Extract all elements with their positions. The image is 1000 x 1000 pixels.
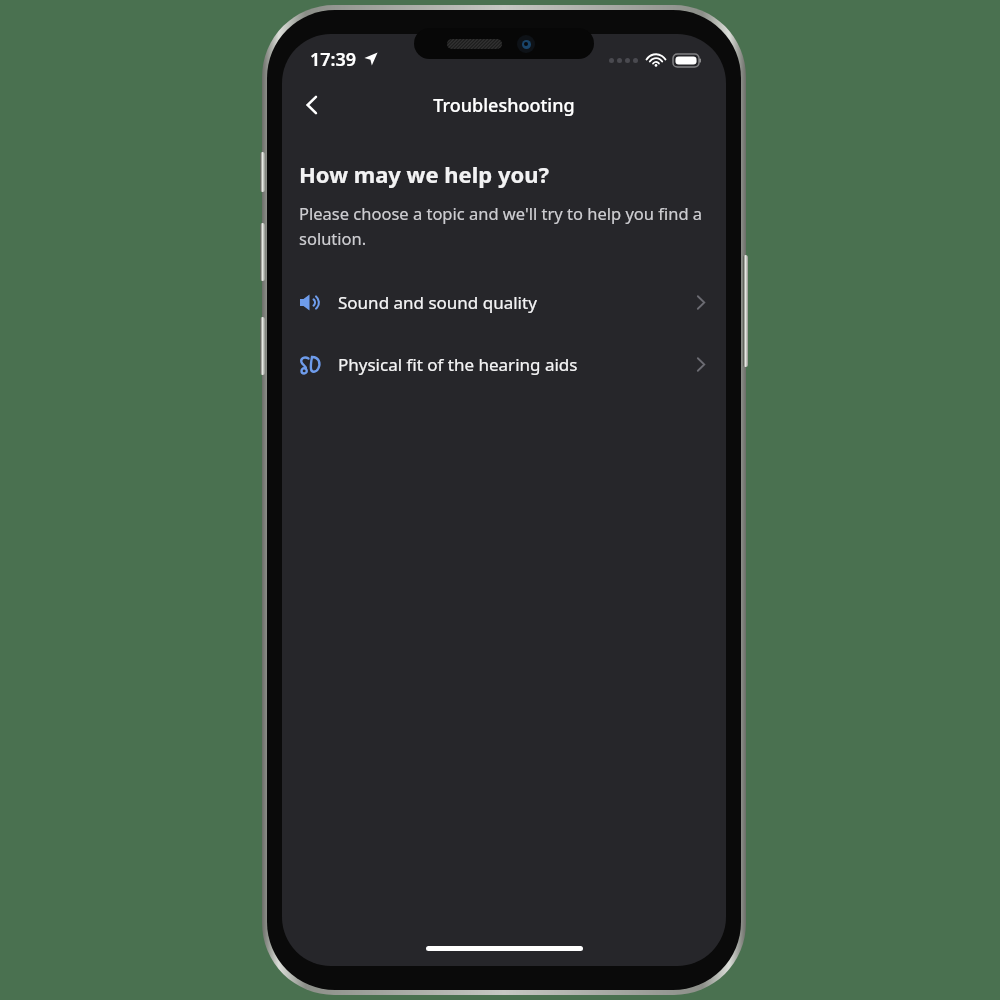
button[interactable]: Back <box>290 83 334 127</box>
button[interactable]: Sound and sound quality <box>282 280 726 324</box>
staticText: How may we help you? <box>299 159 550 189</box>
staticText: Sound and sound quality <box>338 291 691 314</box>
staticText: 17:39 <box>310 47 357 72</box>
staticText: Please choose a topic and we'll try to h… <box>299 202 709 249</box>
staticText: Troubleshooting <box>433 93 575 118</box>
button[interactable]: Physical fit of the hearing aids <box>282 342 726 386</box>
staticText: Physical fit of the hearing aids <box>338 353 691 376</box>
